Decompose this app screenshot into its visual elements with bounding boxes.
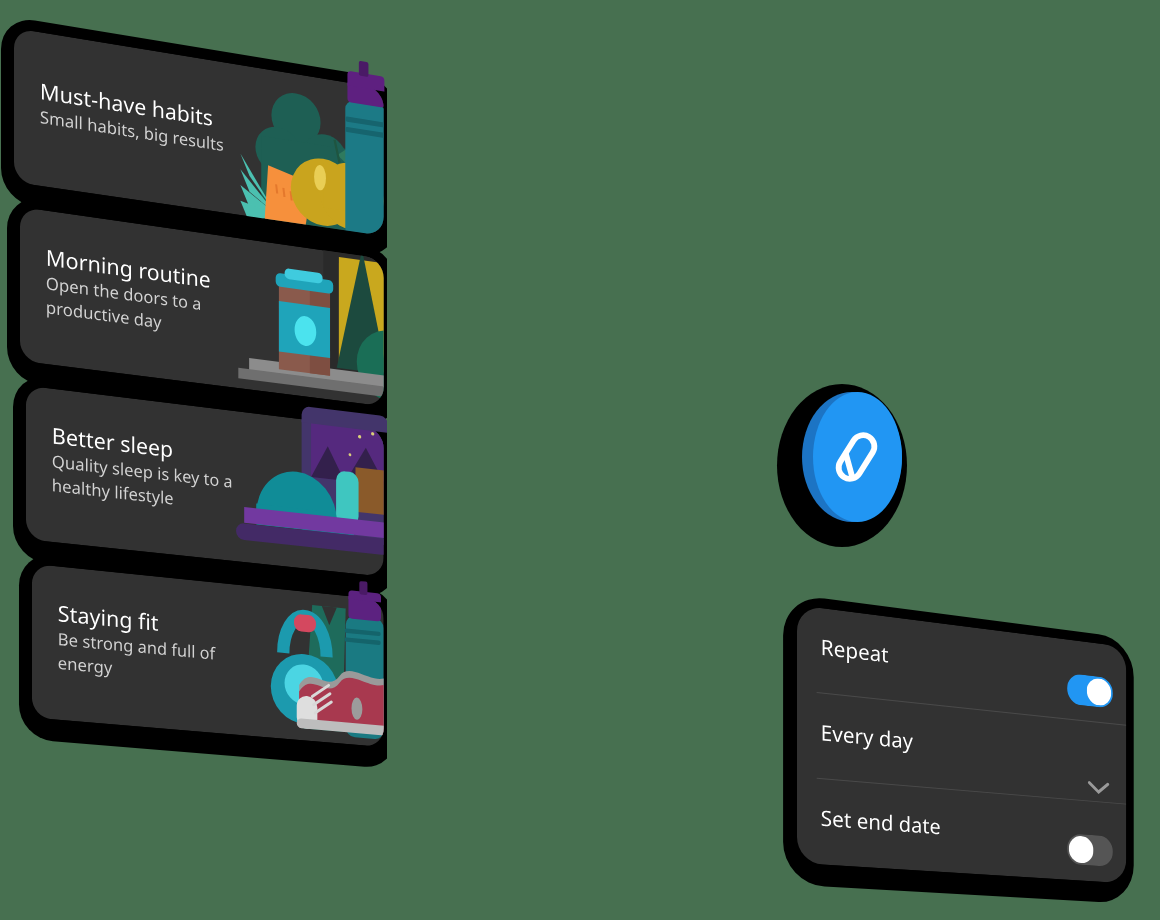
staticText: Morning routine [46,241,211,294]
staticText: Better sleep [52,419,174,463]
button[interactable]: Better sleep [26,385,384,577]
button[interactable]: Set end date [797,777,1126,882]
staticText: Open the doors to a productive day [46,271,201,338]
button[interactable]: Repeat [797,605,1126,725]
staticText: Repeat [821,632,889,668]
staticText: Staying fit [58,597,159,637]
button[interactable]: Every day [797,691,1126,804]
staticText: Must-have habits [40,75,213,132]
staticText: Quality sleep is key to a healthy lifest… [52,449,233,516]
staticText: Be strong and full of energy [58,627,216,688]
staticText: Small habits, big results [40,105,224,156]
button[interactable]: Morning routine [20,207,384,406]
button[interactable]: Staying fit [32,564,384,747]
button[interactable]: Edit [802,392,902,522]
staticText: Every day [821,717,913,755]
button[interactable]: Must-have habits [14,28,384,236]
staticText: Set end date [821,803,941,840]
